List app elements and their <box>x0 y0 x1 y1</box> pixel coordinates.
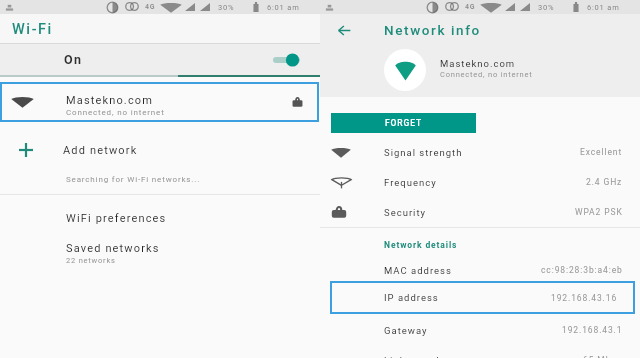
button[interactable]: Gateway <box>320 317 640 343</box>
staticText: Frequency <box>384 177 437 188</box>
staticText: Connected, no internet <box>66 108 165 117</box>
button[interactable]: Back <box>330 16 358 44</box>
staticText: WPA2 PSK <box>575 207 623 217</box>
staticText: 30% <box>538 3 555 12</box>
staticText: Searching for Wi-Fi networks... <box>66 175 201 184</box>
staticText: 192.168.43.1 <box>562 325 623 335</box>
staticText: Mastekno.com <box>440 58 516 69</box>
staticText: FORGET <box>385 118 423 128</box>
staticText: 4G <box>465 3 476 11</box>
button[interactable]: MAC address <box>320 257 640 283</box>
button[interactable]: Security <box>320 197 640 227</box>
button[interactable]: IP address <box>332 283 633 312</box>
button[interactable]: Mastekno.com <box>2 84 317 120</box>
button[interactable]: Signal strength <box>320 137 640 167</box>
staticText: MAC address <box>384 265 452 276</box>
button[interactable]: Link speed <box>320 347 640 358</box>
button[interactable]: Frequency <box>320 167 640 197</box>
staticText: 4G <box>145 3 156 11</box>
staticText: Gateway <box>384 325 428 336</box>
staticText: IP address <box>384 292 439 303</box>
staticText: Signal strength <box>384 147 463 158</box>
button[interactable]: WiFi preferences <box>0 203 320 233</box>
staticText: Link speed <box>384 355 440 358</box>
staticText: 6:01 am <box>587 3 620 12</box>
staticText: 192.168.43.16 <box>551 293 618 303</box>
button[interactable]: On <box>0 44 320 75</box>
button[interactable]: Add network <box>0 133 320 167</box>
staticText: Connected, no internet <box>440 70 533 79</box>
staticText: Saved networks <box>66 242 160 255</box>
staticText: 30% <box>218 3 235 12</box>
staticText: 6:01 am <box>267 3 300 12</box>
staticText: Mastekno.com <box>66 94 154 107</box>
staticText: On <box>64 52 83 67</box>
button[interactable]: FORGET <box>331 113 476 133</box>
staticText: cc:98:28:3b:a4:eb <box>541 265 623 275</box>
staticText: Excellent <box>580 147 623 157</box>
staticText: 2.4 GHz <box>586 177 623 187</box>
button[interactable]: Saved networks <box>0 236 320 270</box>
staticText: 65 Mbps <box>583 355 623 358</box>
staticText: Network info <box>384 22 481 38</box>
staticText: Wi-Fi <box>12 21 53 38</box>
staticText: 22 networks <box>66 256 116 265</box>
staticText: Network details <box>384 240 458 250</box>
staticText: WiFi preferences <box>66 212 167 225</box>
staticText: Security <box>384 207 427 218</box>
staticText: Add network <box>63 144 138 157</box>
